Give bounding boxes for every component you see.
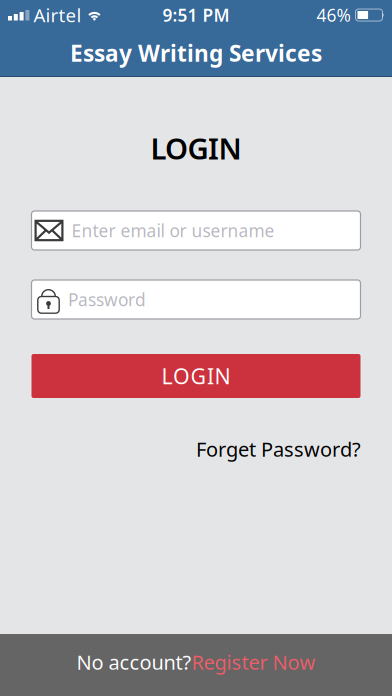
staticText: LOGIN	[161, 362, 230, 390]
staticText: Forget Password?	[196, 436, 361, 462]
button[interactable]: Forget Password?	[196, 436, 361, 462]
button[interactable]: Password	[31, 280, 360, 319]
button[interactable]: Register Now	[191, 649, 315, 675]
staticText: LOGIN	[150, 128, 241, 167]
button[interactable]: LOGIN	[31, 354, 360, 398]
staticText: Password	[68, 288, 146, 311]
staticText: No account?	[76, 649, 191, 675]
staticText: Airtel	[33, 3, 81, 27]
staticText: Enter email or username	[71, 219, 274, 242]
button[interactable]: Enter email or username	[31, 211, 360, 250]
staticText: 9:51 PM	[162, 3, 229, 26]
staticText: Register Now	[191, 649, 315, 675]
staticText: Essay Writing Services	[70, 38, 322, 68]
staticText: 46%	[316, 3, 350, 26]
